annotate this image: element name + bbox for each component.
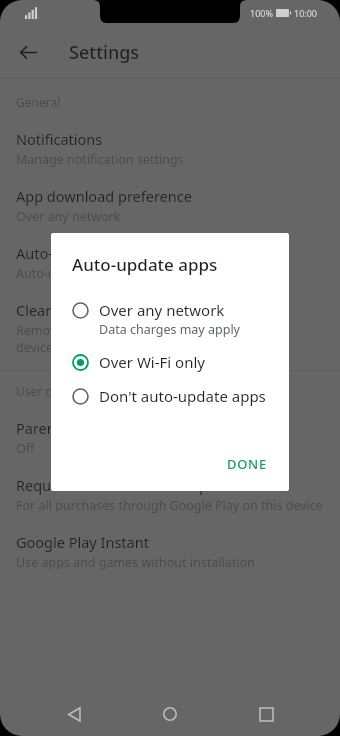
staticText: Over Wi-Fi only xyxy=(99,352,205,372)
button[interactable]: Require authentication for purchases xyxy=(0,466,340,523)
button[interactable]: Back xyxy=(52,692,96,736)
staticText: Require authentication for purchases xyxy=(16,475,269,495)
button[interactable]: Google Play Instant xyxy=(0,523,340,580)
staticText: 100% xyxy=(250,7,273,19)
button[interactable]: Auto-update apps xyxy=(0,234,340,291)
staticText: Clear local search history xyxy=(16,300,186,320)
staticText: Off xyxy=(16,440,35,457)
staticText: Google Play Instant xyxy=(16,532,149,552)
staticText: Data charges may apply xyxy=(99,321,240,338)
staticText: Use apps and games without installation xyxy=(16,554,255,571)
button[interactable]: Home xyxy=(148,692,192,736)
button[interactable]: Recent apps xyxy=(244,692,288,736)
staticText: 10:00 xyxy=(294,7,318,19)
button[interactable]: DONE xyxy=(215,447,279,481)
staticText: General xyxy=(16,94,61,110)
staticText: DONE xyxy=(227,455,267,473)
button[interactable]: App download preference xyxy=(0,177,340,234)
button[interactable]: Over any network xyxy=(51,293,289,345)
staticText: For all purchases through Google Play on… xyxy=(16,497,323,514)
staticText: Don't auto-update apps xyxy=(99,386,266,406)
staticText: User controls xyxy=(16,383,91,399)
staticText: Auto-update apps over Wi-Fi only xyxy=(16,265,211,282)
staticText: Notifications xyxy=(16,129,103,149)
button[interactable]: Parental controls xyxy=(0,409,340,466)
staticText: Auto-update apps xyxy=(72,253,218,276)
button[interactable]: Notifications xyxy=(0,120,340,177)
staticText: Auto-update apps xyxy=(16,243,138,263)
staticText: Removes searches you have performed on t… xyxy=(16,322,324,355)
staticText: Parental controls xyxy=(16,418,132,438)
button[interactable]: Clear local search history xyxy=(0,291,340,364)
staticText: Over any network xyxy=(16,208,121,225)
button[interactable]: Don't auto-update apps xyxy=(51,379,289,413)
staticText: Settings xyxy=(69,40,140,65)
staticText: Manage notification settings xyxy=(16,151,184,168)
button[interactable]: Back xyxy=(10,34,46,70)
button[interactable]: Over Wi-Fi only xyxy=(51,345,289,379)
staticText: App download preference xyxy=(16,186,192,206)
staticText: Over any network xyxy=(99,300,225,320)
